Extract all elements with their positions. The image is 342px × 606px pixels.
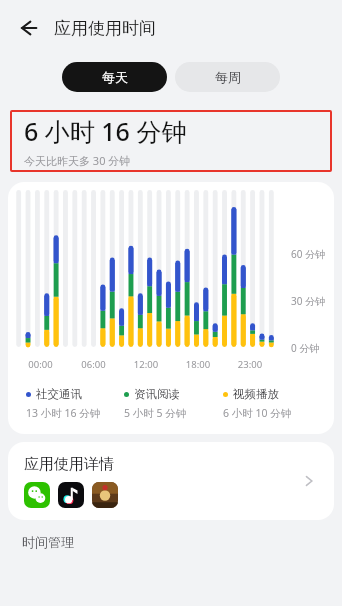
staticText: 06:00 [67,358,120,371]
staticText: 每天 [102,69,128,85]
staticText: 每周 [215,69,241,85]
staticText: 23:00 [224,358,276,371]
staticText: 18:00 [172,358,224,371]
button[interactable]: 应用使用详情 [8,442,334,520]
staticText: 资讯阅读 [134,387,180,401]
staticText: 30 分钟 [291,294,326,308]
staticText: 60 分钟 [291,247,326,261]
staticText: 应用使用详情 [24,455,114,474]
staticText: 社交通讯 [36,387,82,401]
button[interactable]: 每天 [62,62,167,92]
staticText: 应用使用时间 [54,18,156,39]
staticText: 6 小时 10 分钟 [223,406,292,420]
staticText: 今天比昨天多 30 分钟 [24,153,131,168]
staticText: 6 小时 16 分钟 [24,114,187,148]
button[interactable]: 返回 [8,8,48,48]
staticText: 00:00 [14,358,67,371]
staticText: 13 小时 16 分钟 [26,406,101,420]
staticText: 0 分钟 [291,341,320,355]
staticText: 5 小时 5 分钟 [124,406,187,420]
staticText: 时间管理 [22,534,74,550]
staticText: 视频播放 [233,387,279,401]
staticText: 12:00 [120,358,172,371]
button[interactable]: 每周 [175,62,280,92]
